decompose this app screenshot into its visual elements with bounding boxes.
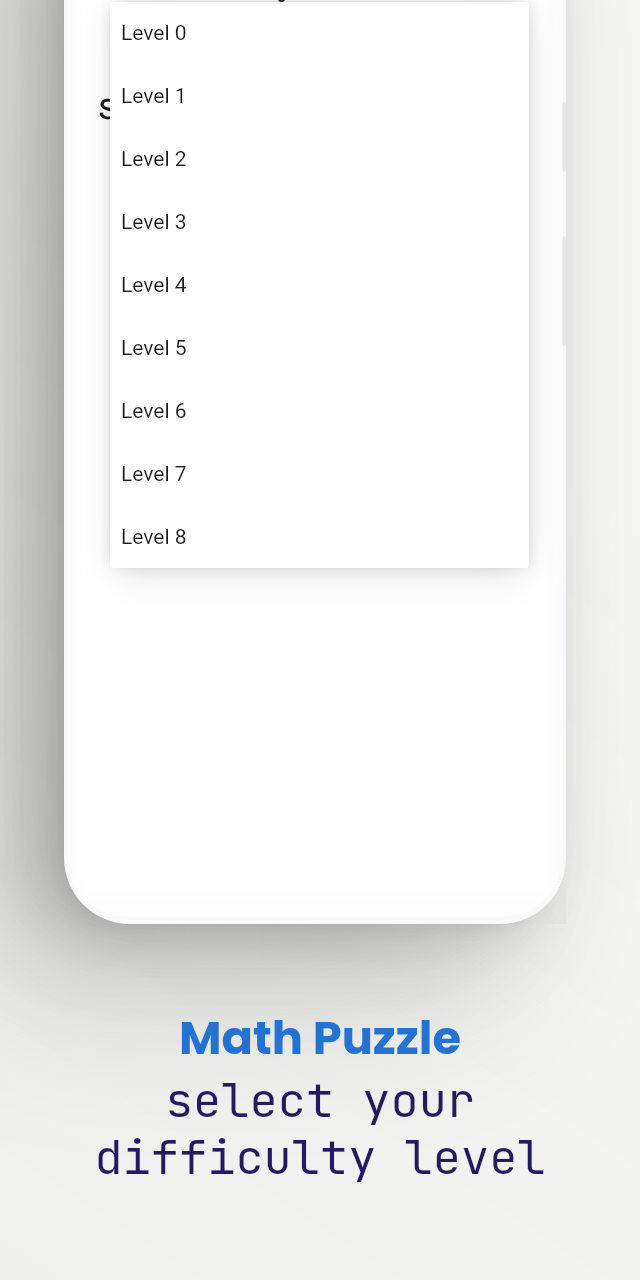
button[interactable]: Level 2 [110, 128, 529, 191]
staticText: Level 0 [121, 21, 187, 46]
staticText: Level 1 [121, 84, 187, 109]
button[interactable]: Level 3 [110, 191, 529, 254]
button[interactable]: Level 6 [110, 380, 529, 443]
staticText: Math Puzzle [0, 1005, 640, 1070]
staticText: Level 5 [121, 336, 187, 361]
staticText: Select a Level [99, 93, 270, 126]
button[interactable]: Level 5 [110, 317, 529, 380]
staticText: Level 7 [121, 462, 187, 487]
button[interactable]: Level 0 [110, 2, 529, 65]
button[interactable]: Level 8 [110, 506, 529, 568]
staticText: Level 2 [121, 147, 187, 172]
staticText: Level 3 [121, 210, 187, 235]
button[interactable]: Level 4 [110, 254, 529, 317]
staticText: Level 8 [121, 525, 187, 550]
staticText: Level 6 [121, 399, 187, 424]
button[interactable]: Level 1 [110, 65, 529, 128]
button[interactable]: Level 7 [110, 443, 529, 506]
staticText: select your difficulty level [0, 1069, 640, 1188]
staticText: Level 4 [121, 273, 187, 298]
